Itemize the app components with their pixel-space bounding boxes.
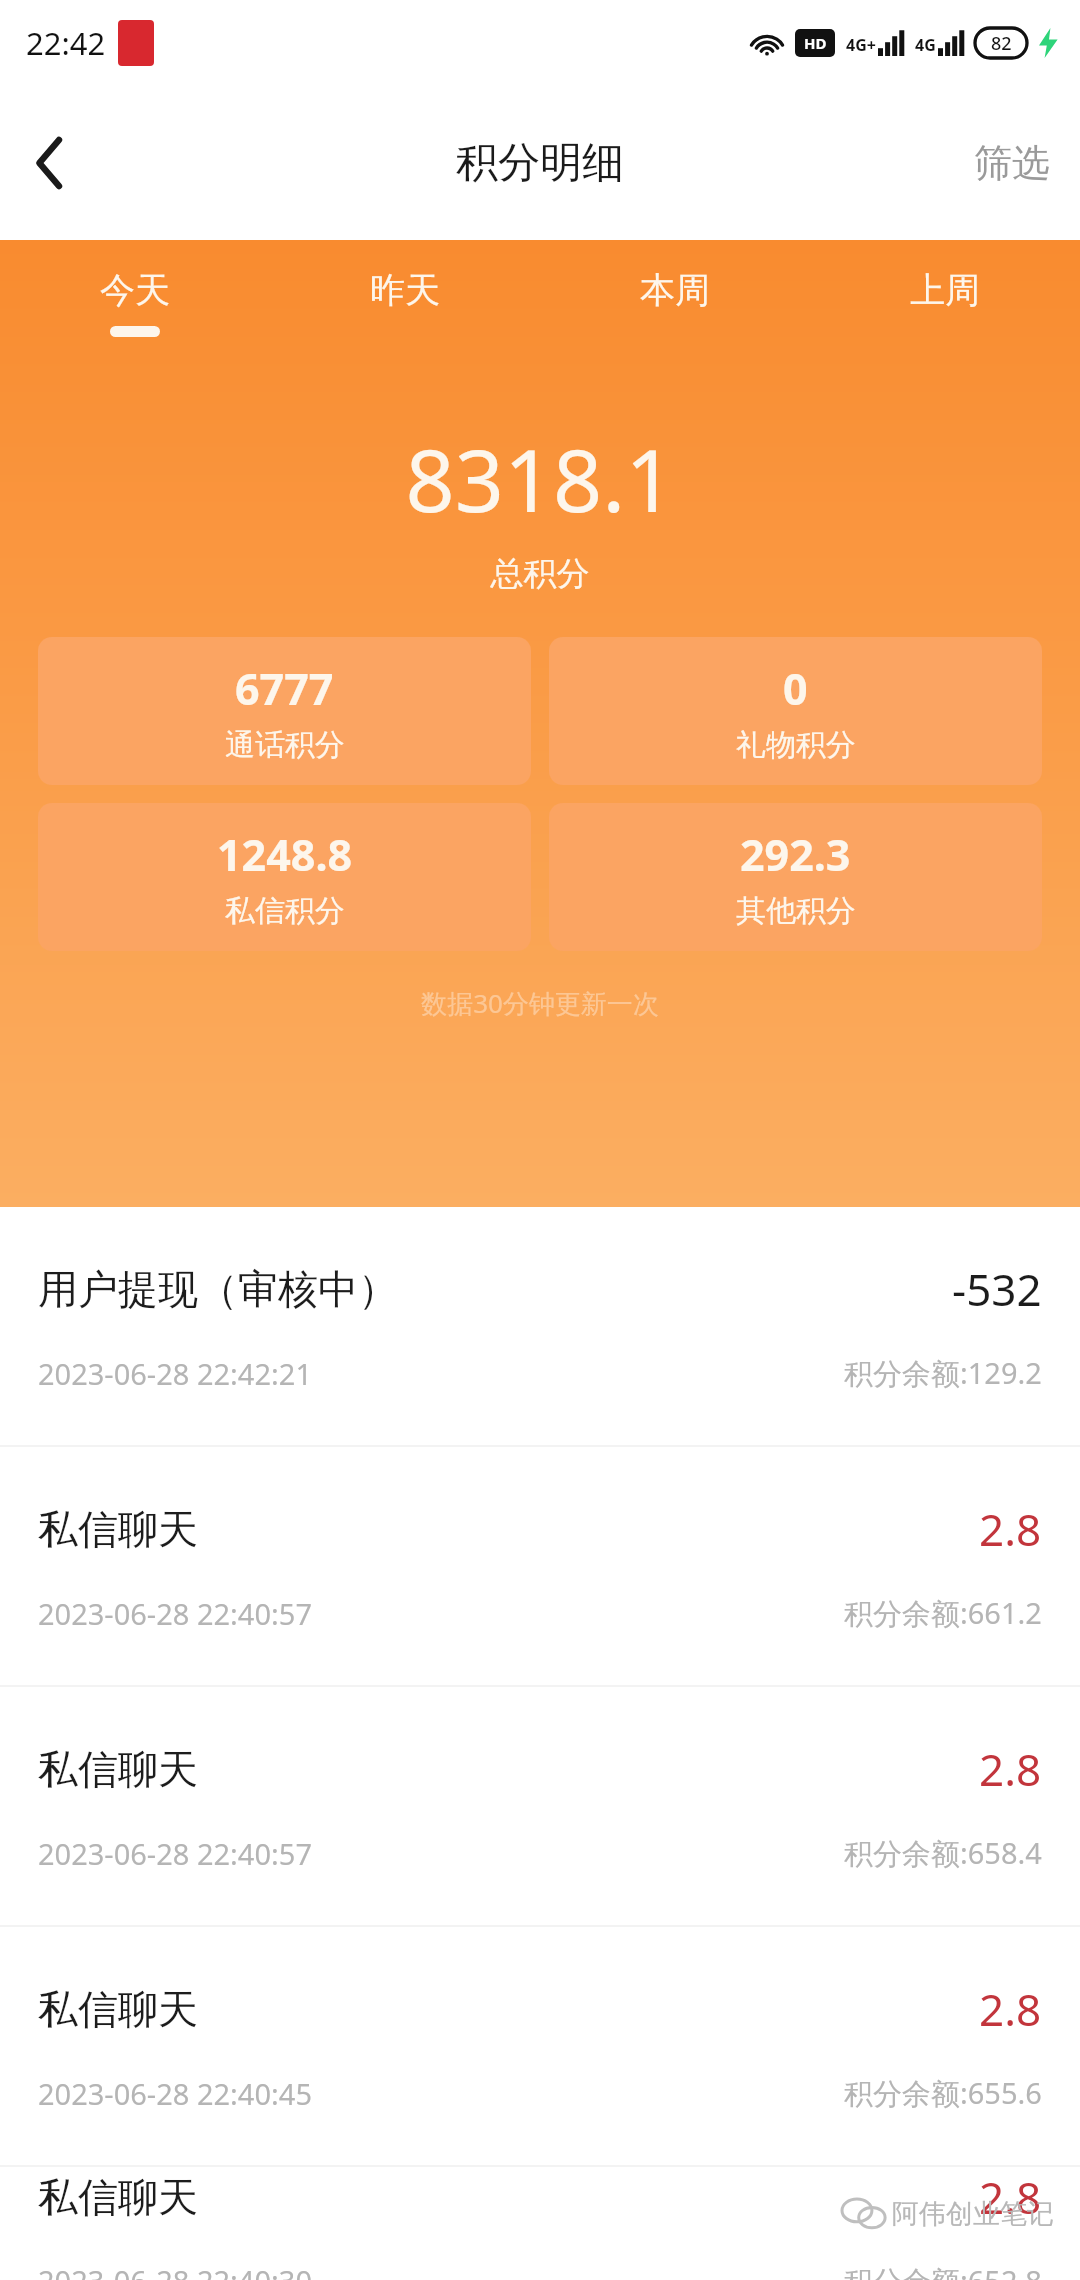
button[interactable]: 292.3 (549, 803, 1042, 951)
button[interactable]: 私信聊天 (0, 2167, 1080, 2280)
staticText: 2.8 (979, 1499, 1042, 1559)
button[interactable]: Back (8, 121, 92, 205)
staticText: 2023-06-28 22:40:57 (38, 1834, 312, 1873)
staticText: 2023-06-28 22:40:30 (38, 2261, 312, 2280)
staticText: 其他积分 (736, 892, 856, 930)
staticText: 1248.8 (217, 825, 353, 884)
button[interactable]: 私信聊天 (0, 1927, 1080, 2165)
staticText: 积分余额:655.6 (844, 2073, 1042, 2113)
staticText: 2.8 (979, 1739, 1042, 1799)
staticText: HD (804, 33, 827, 53)
staticText: 积分余额:658.4 (844, 1833, 1042, 1873)
staticText: 2023-06-28 22:42:21 (38, 1354, 312, 1393)
staticText: 上周 (910, 268, 980, 312)
staticText: 阿伟创业笔记 (892, 2197, 1054, 2231)
staticText: 私信积分 (225, 892, 345, 930)
button[interactable]: 上周 (810, 240, 1080, 350)
staticText: 积分余额:129.2 (844, 1353, 1042, 1393)
staticText: 本周 (640, 268, 710, 312)
button[interactable]: 0 (549, 637, 1042, 785)
staticText: 私信聊天 (38, 1504, 198, 1554)
staticText: 私信聊天 (38, 1984, 198, 2034)
staticText: 用户提现（审核中） (38, 1264, 398, 1314)
staticText: 筛选 (974, 139, 1050, 187)
staticText: 2.8 (979, 1979, 1042, 2039)
staticText: 积分余额:652.8 (844, 2261, 1042, 2280)
staticText: 数据30分钟更新一次 (0, 985, 1080, 1021)
staticText: 私信聊天 (38, 1744, 198, 1794)
staticText: 2.8 (979, 2167, 1042, 2227)
button[interactable]: 本周 (540, 240, 810, 350)
staticText: -532 (952, 1259, 1042, 1319)
staticText: 礼物积分 (736, 726, 856, 764)
staticText: 4G (915, 34, 936, 56)
staticText: 2023-06-28 22:40:45 (38, 2074, 312, 2113)
button[interactable]: 今天 (0, 240, 270, 350)
staticText: 总积分 (0, 553, 1080, 595)
staticText: 积分余额:661.2 (844, 1593, 1042, 1633)
staticText: 4G+ (846, 34, 876, 56)
staticText: 私信聊天 (38, 2172, 198, 2222)
staticText: 0 (783, 659, 808, 718)
staticText: 6777 (235, 659, 334, 718)
button[interactable]: 私信聊天 (0, 1447, 1080, 1685)
button[interactable]: 1248.8 (38, 803, 531, 951)
staticText: 通话积分 (225, 726, 345, 764)
staticText: 82 (991, 31, 1012, 56)
staticText: 292.3 (740, 825, 851, 884)
button[interactable]: 私信聊天 (0, 1687, 1080, 1925)
button[interactable]: 昨天 (270, 240, 540, 350)
button[interactable]: 筛选 (944, 123, 1080, 203)
staticText: 积分明细 (456, 137, 624, 190)
button[interactable]: 用户提现（审核中） (0, 1207, 1080, 1445)
staticText: 今天 (100, 268, 170, 312)
staticText: 8318.1 (0, 420, 1080, 537)
staticText: 昨天 (370, 268, 440, 312)
staticText: 2023-06-28 22:40:57 (38, 1594, 312, 1633)
button[interactable]: 6777 (38, 637, 531, 785)
staticText: 22:42 (26, 22, 106, 64)
